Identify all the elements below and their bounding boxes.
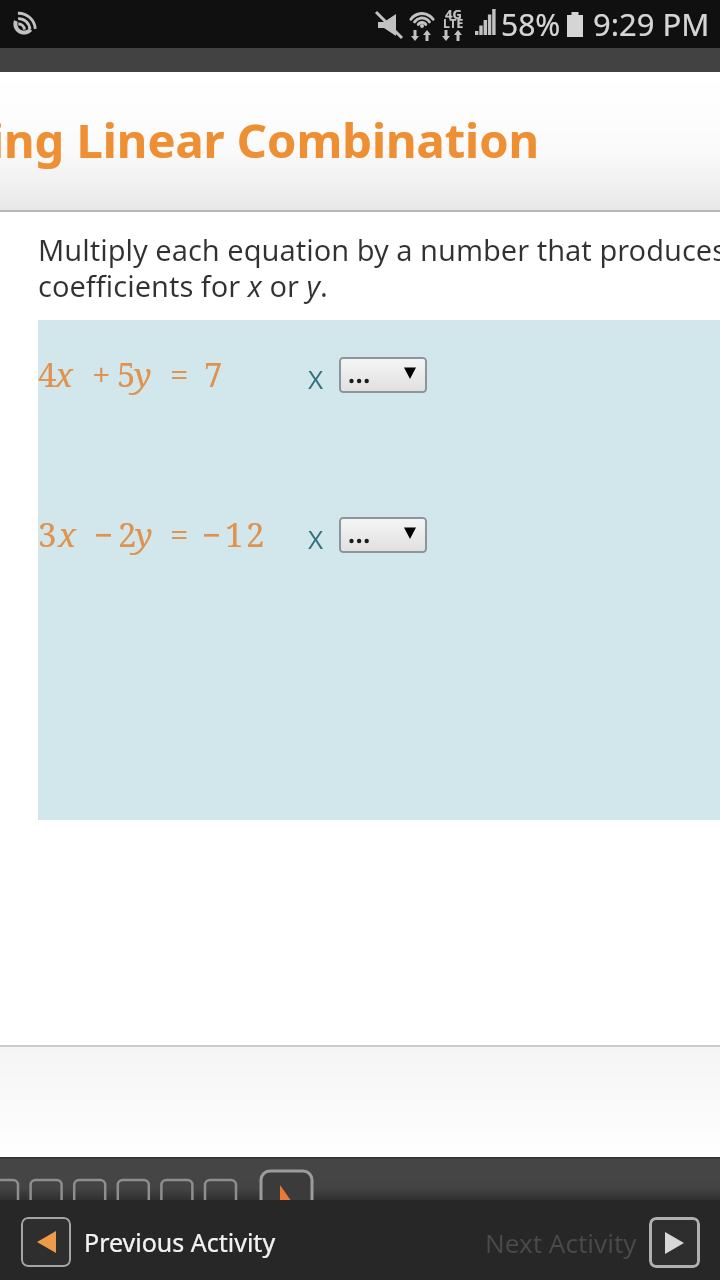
staticText: 7 xyxy=(204,352,223,397)
staticText: X xyxy=(308,521,324,556)
staticText: Multiply each equation by a number that … xyxy=(38,230,720,306)
staticText: 9:29 PM xyxy=(593,3,710,45)
staticText: y xyxy=(134,352,152,397)
staticText: y xyxy=(135,512,153,557)
staticText: 5 xyxy=(117,352,136,397)
staticText: x xyxy=(58,512,77,557)
staticText: 4G xyxy=(445,5,462,23)
staticText: LTE xyxy=(443,15,464,31)
staticText: x xyxy=(55,352,74,397)
staticText: = xyxy=(170,352,189,397)
button[interactable]: Select multiplier xyxy=(339,517,427,553)
staticText: X xyxy=(308,361,324,396)
staticText: − xyxy=(202,512,222,557)
staticText: 58% xyxy=(501,4,561,45)
staticText: + xyxy=(92,352,111,397)
button[interactable]: Next Activity xyxy=(485,1217,700,1268)
staticText: − xyxy=(94,512,114,557)
staticText: Next Activity xyxy=(485,1225,637,1260)
staticText: 1 xyxy=(225,512,244,557)
staticText: = xyxy=(170,512,189,557)
other: Previous Activity xyxy=(21,1217,71,1267)
other: Next Activity xyxy=(649,1217,700,1268)
staticText: 2 xyxy=(246,512,265,557)
staticText: 4 xyxy=(38,352,57,397)
button[interactable]: Select multiplier xyxy=(339,357,427,393)
staticText: Previous Activity xyxy=(84,1225,276,1259)
staticText: 2 xyxy=(118,512,137,557)
staticText: ing Linear Combination xyxy=(0,108,540,172)
button[interactable]: Previous Activity xyxy=(21,1217,276,1267)
staticText: 3 xyxy=(38,512,57,557)
